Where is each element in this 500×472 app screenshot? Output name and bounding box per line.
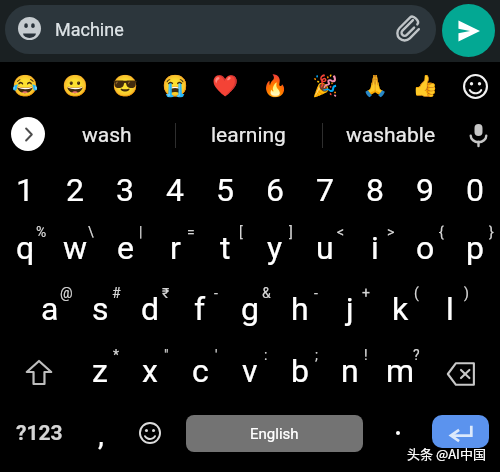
staticText: }	[489, 224, 494, 240]
button[interactable]: 😎	[100, 62, 150, 110]
staticText: d	[141, 290, 160, 328]
staticText: f	[194, 290, 206, 328]
staticText: *	[113, 347, 120, 363]
staticText: p	[466, 229, 484, 267]
button[interactable]: 🎉	[300, 62, 350, 110]
button[interactable]: washable	[326, 110, 456, 160]
button[interactable]: 6	[250, 163, 300, 216]
button[interactable]: 🙏	[350, 62, 400, 110]
staticText: w	[63, 229, 88, 267]
button[interactable]: u	[300, 221, 350, 274]
button[interactable]: s	[75, 282, 125, 335]
staticText: l	[446, 290, 454, 328]
button[interactable]: 4	[150, 163, 200, 216]
button[interactable]: 🔥	[250, 62, 300, 110]
staticText: j	[346, 290, 354, 328]
button[interactable]: 😭	[150, 62, 200, 110]
staticText: 0	[466, 171, 484, 209]
button[interactable]: Shift	[14, 344, 64, 397]
staticText: e	[117, 229, 134, 267]
staticText: -	[214, 285, 218, 301]
button[interactable]: 👍	[400, 62, 450, 110]
staticText: :	[264, 347, 268, 363]
button[interactable]: Open emoji keyboard	[450, 62, 500, 110]
button[interactable]: j	[325, 282, 375, 335]
button[interactable]: 0	[450, 163, 500, 216]
staticText: "	[164, 347, 169, 363]
button[interactable]: z	[75, 344, 125, 397]
button[interactable]	[377, 408, 419, 458]
button[interactable]: i	[350, 221, 400, 274]
button[interactable]: Send	[442, 4, 495, 57]
button[interactable]: Backspace	[436, 344, 486, 397]
button[interactable]: Enter	[432, 415, 489, 448]
staticText: 1	[16, 171, 34, 209]
button[interactable]: b	[275, 344, 325, 397]
staticText: '	[215, 347, 218, 363]
button[interactable]: 7	[300, 163, 350, 216]
button[interactable]: Emoji	[5, 5, 436, 54]
button[interactable]: 3	[100, 163, 150, 216]
button[interactable]: ?123	[9, 408, 69, 458]
button[interactable]: Voice input	[456, 110, 500, 160]
staticText: \	[88, 224, 94, 240]
button[interactable]: x	[125, 344, 175, 397]
button[interactable]: d	[125, 282, 175, 335]
button[interactable]: 2	[50, 163, 100, 216]
button[interactable]: 😂	[0, 62, 50, 110]
staticText: English	[250, 425, 299, 443]
staticText: -	[314, 285, 318, 301]
button[interactable]: t	[200, 221, 250, 274]
button[interactable]: Emoji	[18, 17, 41, 40]
staticText: (	[414, 285, 419, 301]
button[interactable]: e	[100, 221, 150, 274]
button[interactable]: w	[50, 221, 100, 274]
button[interactable]: p	[450, 221, 500, 274]
button[interactable]: q	[0, 221, 50, 274]
staticText: y	[267, 229, 283, 267]
staticText: ?	[413, 347, 420, 363]
button[interactable]: h	[275, 282, 325, 335]
button[interactable]: Emoji	[129, 408, 171, 458]
button[interactable]: English	[186, 415, 363, 452]
button[interactable]: ,	[80, 408, 122, 458]
staticText: [	[239, 224, 243, 240]
staticText: 👍	[412, 74, 439, 99]
staticText: 头条 @AI中国	[407, 444, 486, 463]
button[interactable]: l	[425, 282, 475, 335]
button[interactable]: o	[400, 221, 450, 274]
button[interactable]: a	[25, 282, 75, 335]
button[interactable]: m	[375, 344, 425, 397]
staticText: 2	[66, 171, 84, 209]
button[interactable]: 9	[400, 163, 450, 216]
button[interactable]: g	[225, 282, 275, 335]
staticText: )	[464, 285, 469, 301]
button[interactable]: 8	[350, 163, 400, 216]
staticText: 3	[116, 171, 134, 209]
staticText: &	[262, 285, 271, 301]
button[interactable]: y	[250, 221, 300, 274]
staticText: <	[337, 224, 345, 240]
button[interactable]: k	[375, 282, 425, 335]
staticText: u	[316, 229, 334, 267]
staticText: =	[187, 224, 195, 240]
button[interactable]: v	[225, 344, 275, 397]
staticText: 😭	[162, 74, 189, 99]
button[interactable]: c	[175, 344, 225, 397]
button[interactable]: Attach file	[393, 16, 421, 44]
staticText: q	[16, 229, 35, 267]
button[interactable]: learning	[183, 110, 313, 160]
staticText: 6	[266, 171, 284, 209]
button[interactable]: 😀	[50, 62, 100, 110]
button[interactable]: f	[175, 282, 225, 335]
button[interactable]: ❤️	[200, 62, 250, 110]
button[interactable]: n	[325, 344, 375, 397]
staticText: n	[341, 352, 359, 390]
button[interactable]: 1	[0, 163, 50, 216]
button[interactable]: More suggestions	[11, 117, 45, 151]
button[interactable]: r	[150, 221, 200, 274]
button[interactable]: 5	[200, 163, 250, 216]
staticText: 7	[316, 171, 334, 209]
button[interactable]: wash	[57, 110, 157, 160]
staticText: a	[41, 290, 59, 328]
